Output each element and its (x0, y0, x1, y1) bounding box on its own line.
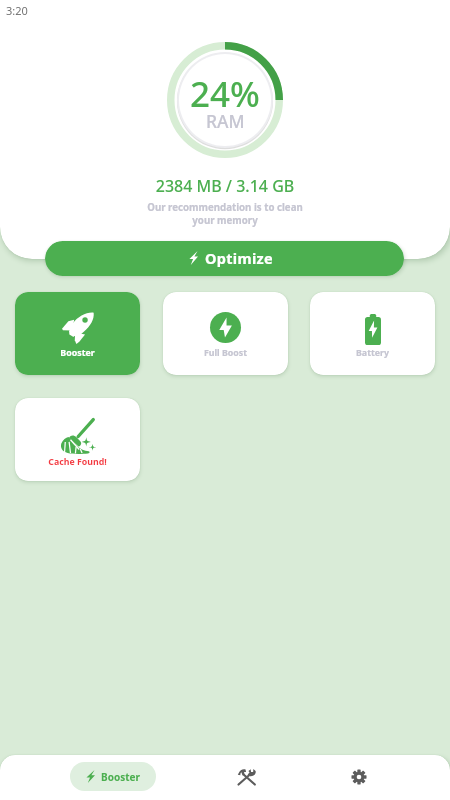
staticText: Booster (101, 770, 140, 784)
button[interactable]: Booster (15, 292, 140, 375)
button[interactable]: Cache Found! (15, 398, 140, 481)
button[interactable]: Optimize (45, 241, 404, 276)
button[interactable]: Battery (310, 292, 435, 375)
button[interactable]: Full Boost (163, 292, 288, 375)
staticText: 24% (190, 70, 260, 118)
staticText: 2384 MB / 3.14 GB (0, 175, 450, 197)
staticText: Our recommendation is to clean your memo… (0, 201, 450, 227)
staticText: Cache Found! (15, 456, 140, 468)
button[interactable]: Booster (70, 762, 156, 791)
button[interactable]: Settings (338, 756, 379, 797)
staticText: 3:20 (6, 3, 28, 18)
staticText: Battery (310, 347, 435, 359)
staticText: Booster (15, 347, 140, 359)
staticText: Optimize (205, 248, 273, 268)
button[interactable]: Tools (226, 756, 267, 797)
staticText: RAM (206, 109, 245, 133)
staticText: Full Boost (163, 347, 288, 359)
